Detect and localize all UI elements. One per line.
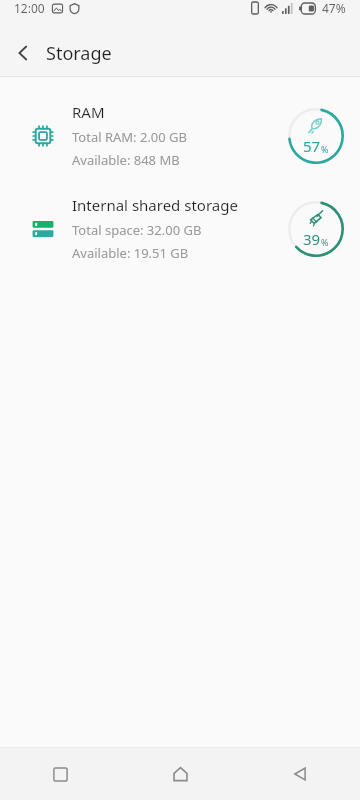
staticText: Storage: [46, 41, 112, 66]
staticText: Internal shared storage: [72, 195, 238, 215]
staticText: Total RAM: 2.00 GB: [72, 128, 188, 146]
button[interactable]: Home: [120, 748, 240, 800]
button[interactable]: Recents: [0, 748, 120, 800]
staticText: 39: [303, 229, 321, 249]
button[interactable]: Back: [240, 748, 360, 800]
staticText: %: [321, 236, 329, 248]
staticText: Available: 848 MB: [72, 151, 180, 169]
button[interactable]: Clean: [286, 199, 346, 259]
button[interactable]: Boost: [286, 106, 346, 166]
staticText: RAM: [72, 102, 105, 122]
staticText: Total space: 32.00 GB: [72, 221, 202, 239]
button[interactable]: Back: [0, 30, 46, 76]
staticText: 47%: [322, 0, 346, 16]
staticText: 12:00: [14, 0, 45, 16]
staticText: Available: 19.51 GB: [72, 244, 189, 262]
button[interactable]: Internal shared storage: [0, 182, 360, 275]
staticText: 57: [303, 136, 321, 156]
button[interactable]: RAM: [0, 89, 360, 182]
staticText: %: [321, 143, 329, 155]
